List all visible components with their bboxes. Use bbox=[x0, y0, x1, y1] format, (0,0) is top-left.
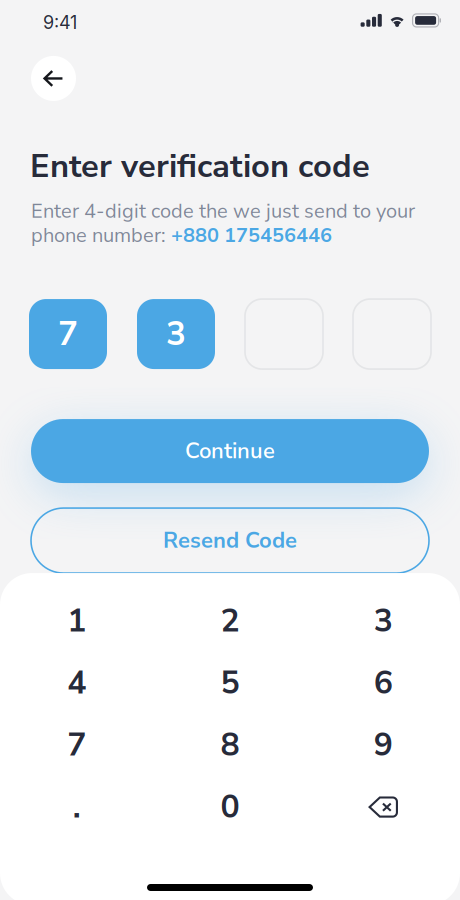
button[interactable]: Digit 7 bbox=[29, 299, 107, 369]
button[interactable]: Resend Code bbox=[31, 508, 429, 573]
button[interactable]: Empty digit bbox=[353, 299, 431, 369]
button[interactable]: 3 bbox=[307, 590, 460, 652]
button[interactable]: 0 bbox=[153, 776, 307, 838]
staticText: 7 bbox=[58, 311, 78, 357]
staticText: 9:41 bbox=[43, 12, 77, 33]
button[interactable]: 5 bbox=[153, 652, 307, 714]
button[interactable]: Back bbox=[31, 56, 76, 101]
staticText: Continue bbox=[185, 436, 275, 466]
staticText: 0 bbox=[220, 785, 239, 829]
button[interactable]: 1 bbox=[0, 590, 153, 652]
staticText: 4 bbox=[67, 661, 86, 705]
staticText: . bbox=[73, 785, 81, 829]
button[interactable]: 7 bbox=[0, 714, 153, 776]
button[interactable]: . bbox=[0, 776, 153, 838]
button[interactable]: Digit 3 bbox=[137, 299, 215, 369]
staticText: 1 bbox=[67, 599, 86, 643]
staticText: Enter 4-digit code the we just send to y… bbox=[31, 197, 415, 225]
button[interactable]: 9 bbox=[307, 714, 460, 776]
staticText: 3 bbox=[166, 311, 186, 357]
staticText: Enter verification code bbox=[30, 144, 370, 188]
staticText: +880 175456446 bbox=[171, 222, 332, 249]
button[interactable]: 2 bbox=[153, 590, 307, 652]
staticText: 2 bbox=[220, 599, 239, 643]
staticText: 7 bbox=[67, 723, 86, 767]
button[interactable]: 8 bbox=[153, 714, 307, 776]
button[interactable]: Empty digit bbox=[245, 299, 323, 369]
staticText: 3 bbox=[374, 599, 393, 643]
button[interactable]: 4 bbox=[0, 652, 153, 714]
staticText: 9 bbox=[374, 723, 393, 767]
button[interactable]: Delete bbox=[307, 776, 460, 838]
staticText: 6 bbox=[374, 661, 393, 705]
staticText: 8 bbox=[220, 723, 239, 767]
button[interactable]: Continue bbox=[31, 419, 429, 483]
staticText: 5 bbox=[220, 661, 239, 705]
staticText: phone number: bbox=[31, 222, 171, 249]
button[interactable]: 6 bbox=[307, 652, 460, 714]
staticText: Resend Code bbox=[163, 526, 297, 556]
